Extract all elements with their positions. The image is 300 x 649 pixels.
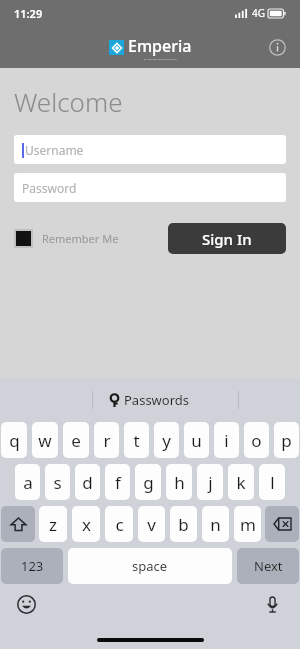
staticText: a (23, 471, 33, 494)
staticText: Sign In (202, 229, 252, 249)
button[interactable]: c (105, 506, 133, 542)
staticText: Passwords (124, 391, 190, 409)
staticText: d (82, 471, 93, 494)
button[interactable]: space (68, 548, 232, 584)
button[interactable]: u (184, 422, 209, 458)
button[interactable]: Backspace (265, 506, 299, 542)
button[interactable]: x (72, 506, 100, 542)
staticText: x (82, 513, 91, 536)
button[interactable]: j (197, 464, 223, 500)
staticText: q (9, 429, 20, 452)
button[interactable]: h (166, 464, 192, 500)
staticText: w (38, 429, 52, 452)
staticText: Welcome (14, 84, 123, 119)
button[interactable]: 123 (1, 548, 63, 584)
staticText: Remember Me (42, 231, 119, 246)
button[interactable]: Information (264, 34, 290, 60)
staticText: k (236, 471, 246, 494)
button[interactable]: Username (14, 135, 286, 164)
button[interactable]: i (214, 422, 239, 458)
staticText: Emperia (128, 35, 192, 57)
button[interactable]: s (45, 464, 70, 500)
staticText: BY EMERGE TECHNOLOGIES (144, 57, 177, 60)
staticText: j (208, 471, 213, 494)
button[interactable]: Emoji (14, 592, 38, 616)
button[interactable]: Voice input (260, 592, 284, 616)
staticText: c (115, 513, 124, 536)
button[interactable]: m (234, 506, 261, 542)
button[interactable]: Shift (1, 506, 35, 542)
staticText: v (147, 513, 156, 536)
button[interactable]: y (154, 422, 179, 458)
staticText: g (143, 471, 154, 494)
staticText: z (49, 513, 57, 536)
staticText: s (53, 471, 62, 494)
button[interactable]: e (63, 422, 89, 458)
button[interactable]: n (202, 506, 229, 542)
staticText: Username (25, 142, 84, 158)
button[interactable]: p (274, 422, 299, 458)
staticText: e (71, 429, 81, 452)
staticText: l (270, 471, 275, 494)
staticText: Next (254, 557, 283, 575)
button[interactable]: l (259, 464, 285, 500)
button[interactable]: w (32, 422, 58, 458)
staticText: t (133, 429, 140, 452)
button[interactable]: g (135, 464, 161, 500)
button[interactable]: Sign In (168, 223, 286, 254)
staticText: o (251, 429, 262, 452)
staticText: r (103, 429, 111, 452)
staticText: f (115, 471, 121, 494)
staticText: Password (22, 180, 77, 196)
staticText: p (281, 429, 292, 452)
button[interactable]: z (39, 506, 67, 542)
staticText: space (132, 557, 168, 575)
button[interactable]: r (94, 422, 119, 458)
button[interactable]: d (75, 464, 100, 500)
button[interactable]: Remember Me (14, 229, 119, 248)
button[interactable]: Next (237, 548, 299, 584)
staticText: i (224, 429, 229, 452)
button[interactable]: b (170, 506, 197, 542)
staticText: h (174, 471, 185, 494)
staticText: 11:29 (14, 6, 43, 21)
staticText: 4G (252, 6, 265, 20)
staticText: b (178, 513, 189, 536)
staticText: 123 (21, 557, 44, 575)
staticText: y (162, 429, 171, 452)
button[interactable]: q (1, 422, 27, 458)
staticText: n (210, 513, 221, 536)
button[interactable]: k (228, 464, 254, 500)
button[interactable]: Passwords (110, 391, 190, 409)
button[interactable]: o (244, 422, 269, 458)
button[interactable]: v (138, 506, 165, 542)
staticText: u (191, 429, 202, 452)
button[interactable]: Password (14, 173, 286, 202)
button[interactable]: f (105, 464, 130, 500)
button[interactable]: t (124, 422, 149, 458)
button[interactable]: a (15, 464, 40, 500)
staticText: m (240, 513, 256, 536)
